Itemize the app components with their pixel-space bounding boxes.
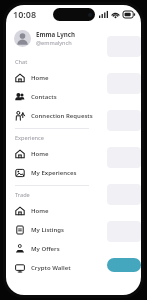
staticText: Trade	[15, 191, 30, 199]
staticText: Connection Requests	[31, 112, 93, 120]
staticText: 10:08	[13, 8, 37, 20]
staticText: Home	[31, 150, 49, 158]
button[interactable]: Connection Requests	[6, 106, 95, 125]
button[interactable]: Primary action	[107, 258, 141, 272]
button[interactable]: Home	[6, 68, 95, 87]
staticText: My Experiences	[31, 169, 77, 177]
button[interactable]: Home	[6, 201, 95, 220]
staticText: Emma Lynch	[36, 30, 76, 38]
staticText: Chat	[15, 58, 28, 66]
staticText: Experience	[15, 134, 44, 142]
button[interactable]: Emma Lynch	[6, 27, 95, 50]
button[interactable]: Crypto Wallet	[6, 258, 95, 277]
button[interactable]: My Offers	[6, 239, 95, 258]
staticText: Home	[31, 74, 49, 82]
button[interactable]: Home	[6, 144, 95, 163]
staticText: My Listings	[31, 226, 65, 234]
button[interactable]: My Experiences	[6, 163, 95, 182]
button[interactable]: Contacts	[6, 87, 95, 106]
staticText: Home	[31, 207, 49, 215]
staticText: Contacts	[31, 93, 57, 101]
button[interactable]: My Listings	[6, 220, 95, 239]
staticText: My Offers	[31, 245, 60, 253]
staticText: Crypto Wallet	[31, 264, 71, 272]
staticText: @emmalynch	[36, 39, 72, 47]
